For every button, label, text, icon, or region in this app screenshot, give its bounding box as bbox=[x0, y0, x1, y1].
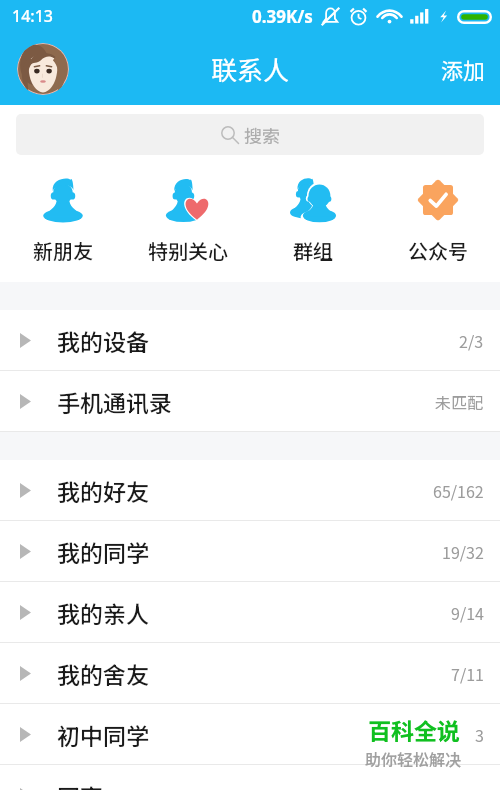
staticText: 0.39K/s bbox=[252, 5, 313, 28]
staticText: 初中同学 bbox=[57, 718, 149, 751]
button[interactable]: 手机通讯录 bbox=[0, 371, 500, 432]
button[interactable]: 添加 bbox=[441, 53, 500, 85]
staticText: 手机通讯录 bbox=[57, 385, 172, 418]
button[interactable]: 新朋友 bbox=[0, 177, 125, 265]
staticText: 我的同学 bbox=[57, 535, 149, 568]
button[interactable]: 我的舍友 bbox=[0, 643, 500, 704]
button[interactable]: 我的亲人 bbox=[0, 582, 500, 643]
staticText: 我的好友 bbox=[57, 474, 149, 507]
staticText: 特别关心 bbox=[148, 236, 228, 265]
staticText: 助你轻松解决 bbox=[365, 747, 462, 770]
button[interactable]: 我的同学 bbox=[0, 521, 500, 582]
staticText: 公众号 bbox=[408, 236, 468, 265]
staticText: 新朋友 bbox=[33, 236, 93, 265]
staticText: 65/162 bbox=[433, 479, 484, 502]
staticText: 搜索 bbox=[244, 122, 280, 148]
staticText: 我的亲人 bbox=[57, 596, 149, 629]
button[interactable]: 特别关心 bbox=[125, 177, 250, 265]
staticText: 群组 bbox=[293, 236, 333, 265]
staticText: 3 bbox=[475, 723, 484, 746]
staticText: 我的舍友 bbox=[57, 657, 149, 690]
staticText: 2/3 bbox=[459, 329, 484, 352]
staticText: 联系人 bbox=[211, 50, 290, 88]
button[interactable]: 初中同学 bbox=[0, 704, 500, 765]
staticText: 19/32 bbox=[442, 540, 484, 563]
staticText: 9/14 bbox=[451, 601, 484, 624]
button[interactable]: Profile bbox=[17, 43, 69, 95]
staticText: 7/11 bbox=[451, 662, 484, 685]
button[interactable]: 我的设备 bbox=[0, 310, 500, 371]
staticText: 百科全说 bbox=[368, 713, 460, 746]
staticText: 未匹配 bbox=[435, 390, 484, 413]
button[interactable]: 搜索 bbox=[16, 114, 484, 155]
button[interactable]: 公众号 bbox=[375, 177, 500, 265]
button[interactable]: 群组 bbox=[250, 177, 375, 265]
staticText: 我的设备 bbox=[57, 324, 149, 357]
staticText: 14:13 bbox=[12, 5, 53, 27]
button[interactable]: 同事 bbox=[0, 765, 500, 790]
staticText: 同事 bbox=[57, 779, 103, 790]
button[interactable]: 我的好友 bbox=[0, 460, 500, 521]
